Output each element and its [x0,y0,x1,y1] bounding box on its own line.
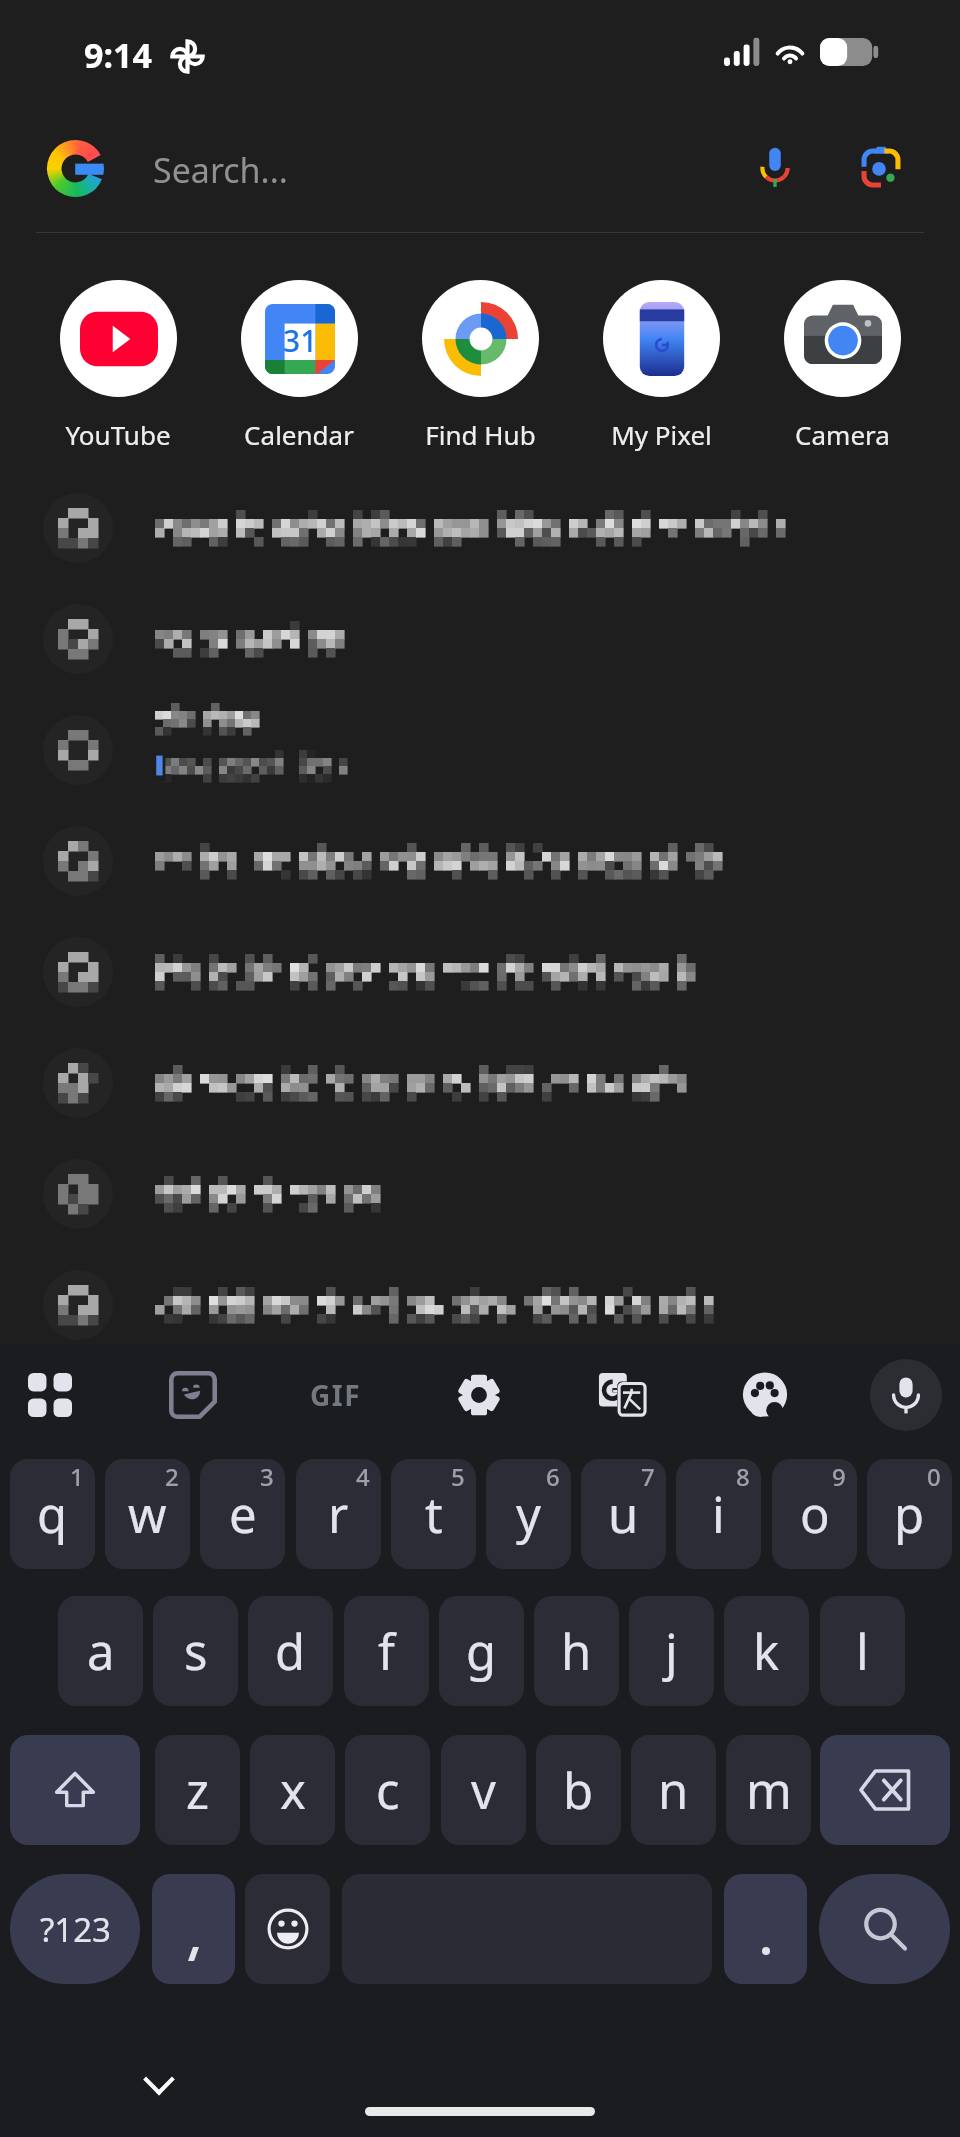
button[interactable]: Comma [152,1874,235,1984]
staticText: u [608,1481,639,1548]
button[interactable]: c [345,1735,430,1845]
staticText: r [328,1481,349,1548]
button[interactable]: t [391,1459,476,1569]
button[interactable]: GIF [300,1359,372,1431]
button[interactable] [0,916,960,1027]
button[interactable]: g [439,1596,524,1706]
button[interactable]: v [441,1735,526,1845]
button[interactable]: i [676,1459,761,1569]
button[interactable]: d [248,1596,333,1706]
button[interactable]: h [534,1596,619,1706]
button[interactable]: u [581,1459,666,1569]
staticText: 3 [260,1460,274,1493]
button[interactable]: Stickers [157,1359,229,1431]
staticText: e [229,1481,257,1548]
button[interactable]: YouTube [28,280,208,452]
staticText: d [275,1618,306,1685]
staticText: 5 [451,1460,465,1493]
staticText: ?123 [40,1907,111,1952]
button[interactable]: Search [819,1874,950,1984]
staticText: k [753,1618,780,1685]
button[interactable]: Shift [10,1735,140,1845]
button[interactable]: x [250,1735,335,1845]
button[interactable]: e [200,1459,285,1569]
staticText: x [280,1757,306,1824]
button[interactable] [0,472,960,583]
staticText: p [894,1481,925,1548]
staticText: 8 [736,1460,750,1493]
button[interactable]: Backspace [820,1735,950,1845]
staticText: n [658,1757,689,1824]
staticText: f [378,1618,395,1685]
button[interactable]: b [536,1735,621,1845]
staticText: YouTube [65,417,171,452]
staticText: 2 [165,1460,179,1493]
staticText: s [184,1618,208,1685]
staticText: Calendar [244,417,354,452]
button[interactable]: a [58,1596,143,1706]
staticText: w [128,1481,167,1548]
staticText: 31 [283,320,318,361]
staticText: 7 [641,1460,655,1493]
staticText: i [712,1481,725,1548]
button[interactable]: s [153,1596,238,1706]
staticText: m [746,1757,792,1824]
staticText: t [425,1481,443,1548]
staticText: y [516,1481,541,1548]
button[interactable]: Settings [443,1359,515,1431]
staticText: a [87,1618,115,1685]
staticText: b [563,1757,594,1824]
button[interactable]: Period [724,1874,807,1984]
button[interactable]: k [724,1596,809,1706]
button[interactable]: z [155,1735,240,1845]
staticText: v [471,1757,496,1824]
button[interactable]: Voice search [739,132,811,204]
staticText: 0 [927,1460,941,1493]
button[interactable]: m [726,1735,811,1845]
staticText: o [800,1481,830,1548]
button[interactable]: j [629,1596,714,1706]
button[interactable]: f [344,1596,429,1706]
button[interactable] [0,1027,960,1138]
button[interactable]: 31 [209,280,389,452]
button[interactable]: o [772,1459,857,1569]
button[interactable]: Find Hub [390,280,570,452]
button[interactable]: Translate [586,1359,658,1431]
button[interactable]: Symbols [10,1874,140,1984]
staticText: z [186,1757,210,1824]
button[interactable]: Hide keyboard [130,2057,187,2114]
button[interactable]: y [486,1459,571,1569]
button[interactable] [0,694,960,805]
staticText: c [376,1757,400,1824]
button[interactable] [0,1249,960,1360]
button[interactable]: p [867,1459,952,1569]
staticText: 9 [832,1460,846,1493]
button[interactable]: Voice input [870,1359,942,1431]
staticText: Search... [153,147,288,193]
button[interactable]: n [631,1735,716,1845]
staticText: q [37,1481,68,1548]
staticText: Find Hub [425,417,536,452]
button[interactable]: Google Lens [845,132,917,204]
button[interactable]: l [820,1596,905,1706]
staticText: GIF [310,1376,362,1414]
button[interactable]: w [105,1459,190,1569]
button[interactable]: q [10,1459,95,1569]
staticText: 4 [356,1460,370,1493]
staticText: Camera [795,417,890,452]
staticText: h [561,1618,592,1685]
button[interactable]: Themes [729,1359,801,1431]
button[interactable]: r [296,1459,381,1569]
staticText: 1 [70,1460,84,1493]
staticText: My Pixel [611,417,712,452]
button[interactable]: Camera [752,280,932,452]
button[interactable] [0,583,960,694]
staticText: g [466,1618,497,1685]
button[interactable]: My Pixel [571,280,751,452]
button[interactable]: Emoji [245,1874,330,1984]
button[interactable] [0,805,960,916]
staticText: l [856,1618,869,1685]
button[interactable]: Apps [14,1359,86,1431]
button[interactable] [0,1138,960,1249]
